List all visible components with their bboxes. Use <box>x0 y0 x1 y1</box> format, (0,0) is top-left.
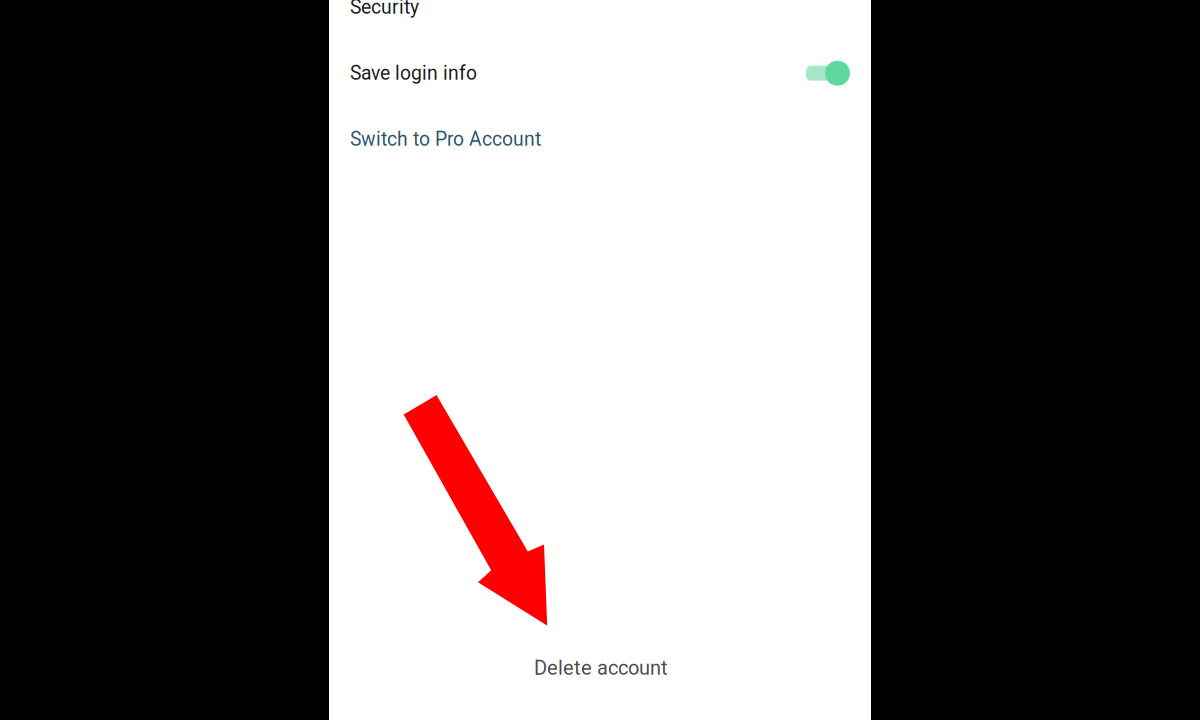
button[interactable]: Security <box>329 0 871 40</box>
staticText: Save login info <box>350 62 477 85</box>
staticText: Security <box>350 0 419 19</box>
button[interactable]: Switch to Pro Account <box>329 106 871 172</box>
button[interactable]: Save login info <box>329 40 871 106</box>
staticText: Delete account <box>534 656 668 680</box>
staticText: Switch to Pro Account <box>350 128 541 151</box>
button[interactable]: Delete account <box>330 646 872 690</box>
